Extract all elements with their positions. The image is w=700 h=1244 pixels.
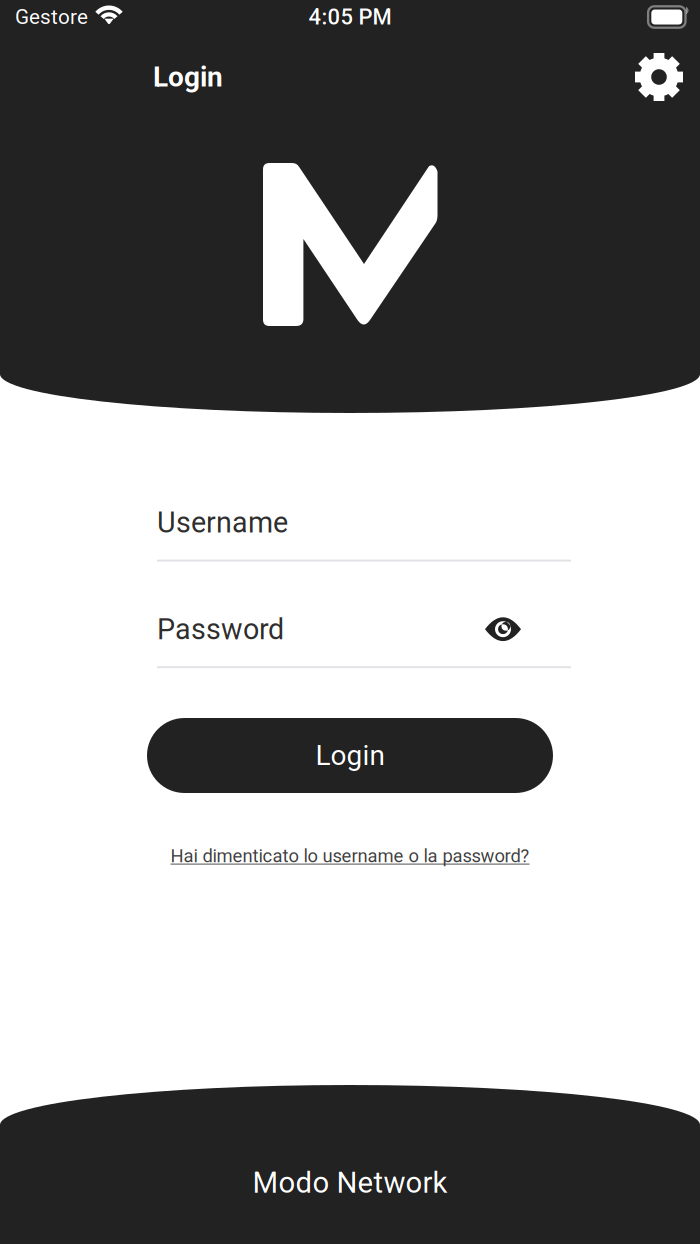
staticText: Hai dimenticato lo username o la passwor…	[170, 845, 529, 867]
button[interactable]: Login	[147, 718, 553, 793]
button[interactable]: Hai dimenticato lo username o la passwor…	[0, 842, 700, 870]
button[interactable]: Settings	[629, 47, 689, 107]
button[interactable]: Login	[153, 51, 223, 103]
staticText: Gestore	[15, 5, 88, 29]
staticText: Modo Network	[252, 1166, 447, 1200]
staticText: Username	[157, 506, 288, 540]
staticText: 4:05 PM	[308, 4, 391, 30]
staticText: Login	[315, 739, 384, 772]
staticText: Password	[157, 613, 284, 646]
staticText: Login	[153, 61, 223, 93]
button[interactable]: Show password	[475, 613, 533, 645]
